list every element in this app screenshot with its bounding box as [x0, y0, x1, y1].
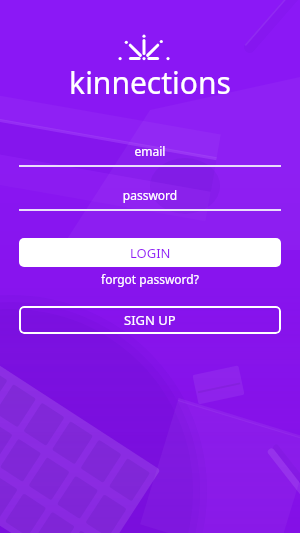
button[interactable]: LOGIN: [19, 238, 281, 267]
staticText: SIGN UP: [124, 311, 176, 329]
button[interactable]: forgot password?: [93, 268, 207, 290]
staticText: LOGIN: [130, 244, 171, 262]
button[interactable]: password: [19, 187, 281, 211]
staticText: kinnections: [0, 62, 300, 103]
button[interactable]: email: [19, 143, 281, 167]
staticText: password: [19, 187, 281, 203]
staticText: forgot password?: [101, 271, 199, 287]
button[interactable]: SIGN UP: [19, 306, 281, 334]
staticText: email: [19, 143, 281, 159]
